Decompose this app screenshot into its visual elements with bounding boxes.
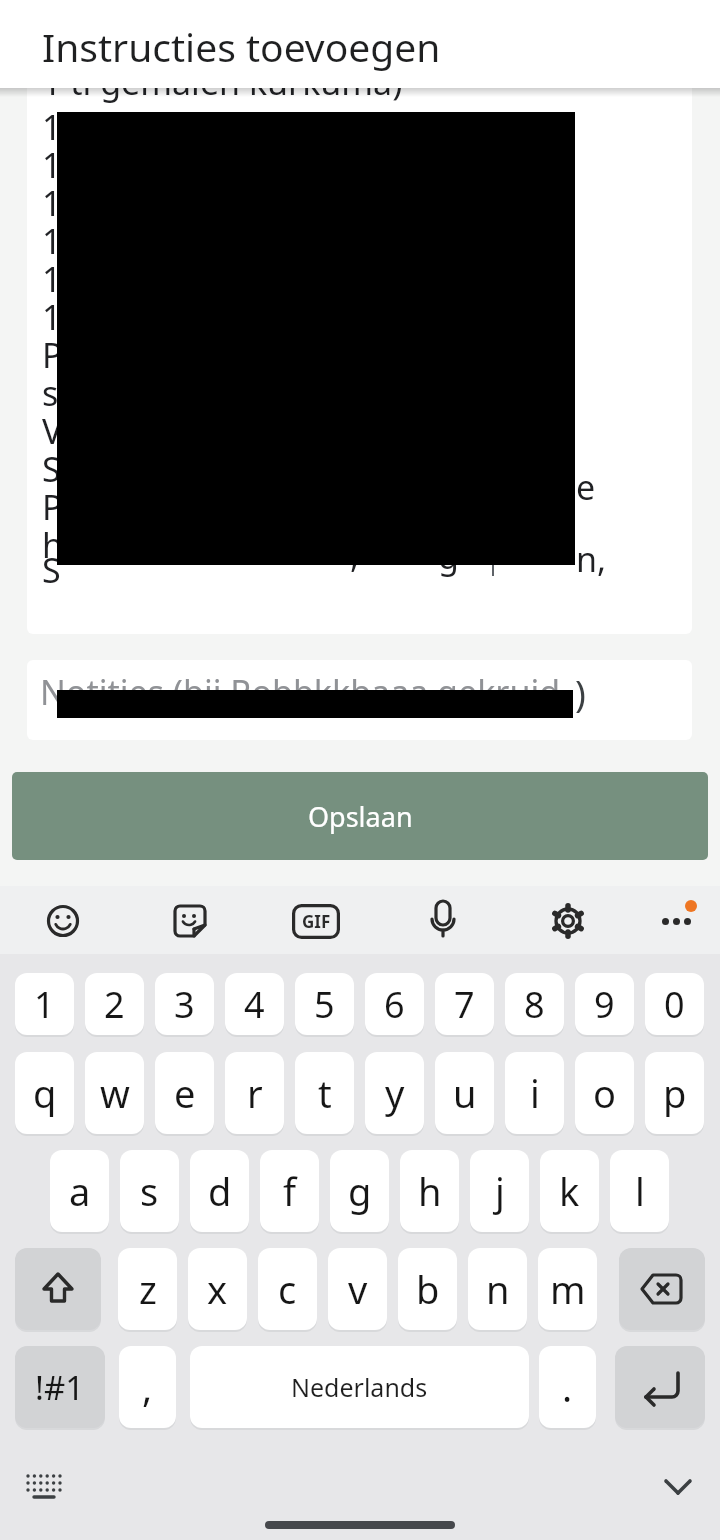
button[interactable]: 7 [435, 973, 494, 1035]
button[interactable] [546, 899, 590, 943]
button[interactable]: s [120, 1150, 179, 1232]
staticText: 5 [314, 980, 335, 1029]
staticText: o [593, 1067, 616, 1119]
button[interactable]: o [575, 1052, 634, 1134]
button[interactable]: b [398, 1248, 457, 1330]
staticText: 3 [174, 980, 195, 1029]
staticText: r [247, 1067, 263, 1119]
button[interactable]: z [118, 1248, 177, 1330]
button[interactable]: GIF [292, 904, 340, 939]
button[interactable] [619, 1248, 705, 1330]
button[interactable]: 9 [575, 973, 634, 1035]
button[interactable]: i [505, 1052, 564, 1134]
staticText: , [142, 1361, 153, 1413]
button[interactable] [421, 898, 465, 944]
staticText: Instructies toevoegen [42, 20, 441, 73]
staticText: Notities (bij Robbkkbaaa gekruid [40, 669, 561, 715]
staticText: 1 [42, 104, 62, 150]
button[interactable]: c [258, 1248, 317, 1330]
button[interactable]: !#1 [15, 1346, 105, 1428]
button[interactable]: h [400, 1150, 459, 1232]
staticText: h [418, 1165, 442, 1217]
staticText: 4 [244, 980, 265, 1029]
staticText: 1 [42, 218, 62, 264]
button[interactable]: Nederlands [190, 1346, 529, 1428]
button[interactable]: 8 [505, 973, 564, 1035]
button[interactable]: j [470, 1150, 529, 1232]
staticText: w [100, 1067, 130, 1119]
staticText: ) [575, 669, 586, 718]
staticText: g [438, 533, 459, 579]
button[interactable]: 3 [155, 973, 214, 1035]
button[interactable]: , [119, 1346, 176, 1428]
staticText: V [42, 408, 63, 454]
staticText: g [348, 1165, 372, 1217]
button[interactable] [654, 893, 704, 943]
staticText: 6 [384, 980, 405, 1029]
staticText: 9 [594, 980, 615, 1029]
staticText: s [42, 370, 59, 416]
button[interactable]: m [538, 1248, 597, 1330]
button[interactable]: l [610, 1150, 669, 1232]
button[interactable]: y [365, 1052, 424, 1134]
staticText: v [348, 1263, 368, 1315]
staticText: b [416, 1263, 440, 1315]
staticText: x [207, 1263, 228, 1315]
button[interactable]: d [190, 1150, 249, 1232]
staticText: 2 [104, 980, 125, 1029]
button[interactable]: . [539, 1346, 596, 1428]
button[interactable]: 0 [645, 973, 704, 1035]
staticText: q [33, 1067, 57, 1119]
button[interactable]: e [155, 1052, 214, 1134]
staticText: 0 [664, 980, 685, 1029]
button[interactable]: 1 [15, 973, 74, 1035]
button[interactable]: u [435, 1052, 494, 1134]
button[interactable]: 2 [85, 973, 144, 1035]
staticText: k [559, 1165, 580, 1217]
button[interactable]: 6 [365, 973, 424, 1035]
button[interactable] [24, 1470, 64, 1506]
staticText: h [42, 522, 64, 568]
button[interactable] [168, 899, 212, 943]
staticText: j [495, 1165, 505, 1217]
staticText: !#1 [35, 1365, 85, 1410]
staticText: 1 tl gemalen kurkuma) [42, 59, 403, 105]
button[interactable] [27, 78, 692, 634]
button[interactable]: p [645, 1052, 704, 1134]
staticText: , [350, 532, 360, 578]
staticText: p [663, 1067, 687, 1119]
button[interactable] [658, 1466, 698, 1506]
staticText: s [140, 1165, 159, 1217]
staticText: m [550, 1263, 586, 1315]
button[interactable] [41, 899, 85, 943]
staticText: S [42, 446, 61, 492]
button[interactable] [15, 1248, 101, 1330]
staticText: . [562, 1361, 573, 1413]
button[interactable]: a [50, 1150, 109, 1232]
button[interactable]: n [468, 1248, 527, 1330]
button[interactable]: k [540, 1150, 599, 1232]
button[interactable]: 4 [225, 973, 284, 1035]
button[interactable]: q [15, 1052, 74, 1134]
button[interactable]: x [188, 1248, 247, 1330]
staticText: P [42, 484, 63, 530]
button[interactable] [27, 660, 692, 740]
button[interactable]: f [260, 1150, 319, 1232]
button[interactable]: 5 [295, 973, 354, 1035]
button[interactable]: w [85, 1052, 144, 1134]
button[interactable]: t [295, 1052, 354, 1134]
staticText: l [635, 1165, 645, 1217]
staticText: 1 [42, 142, 62, 188]
staticText: n, [576, 536, 607, 582]
button[interactable] [615, 1346, 705, 1428]
staticText: d [208, 1165, 232, 1217]
staticText: S [42, 547, 61, 593]
button[interactable]: v [328, 1248, 387, 1330]
staticText: a [69, 1165, 91, 1217]
staticText: 1 [42, 180, 62, 226]
staticText: i [530, 1067, 540, 1119]
staticText: t [318, 1067, 332, 1119]
button[interactable]: Opslaan [12, 772, 708, 860]
button[interactable]: r [225, 1052, 284, 1134]
button[interactable]: g [330, 1150, 389, 1232]
